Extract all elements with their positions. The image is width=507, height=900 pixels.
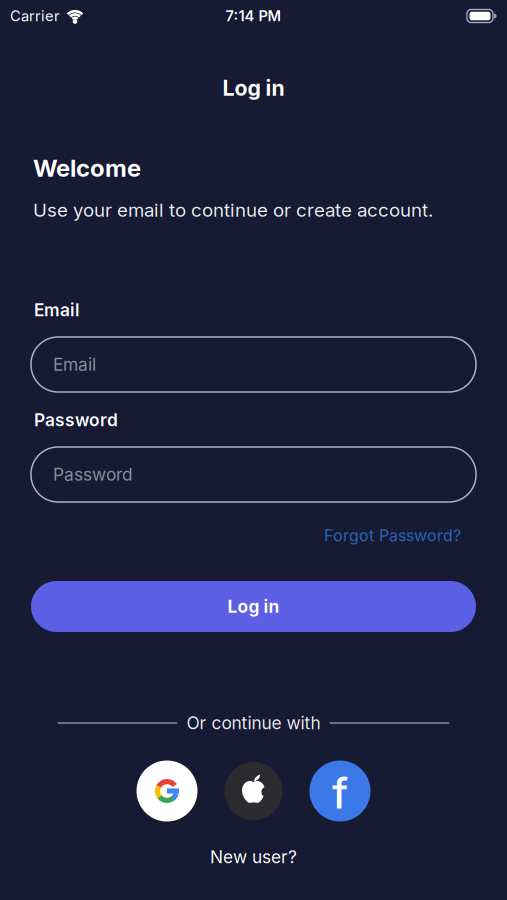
- staticText: Or continue with: [186, 713, 320, 733]
- staticText: Welcome: [33, 154, 141, 182]
- staticText: f: [332, 768, 348, 818]
- staticText: Log in: [227, 596, 279, 617]
- staticText: Email: [34, 300, 80, 320]
- button[interactable]: New user?: [210, 847, 297, 867]
- staticText: Log in: [222, 75, 284, 101]
- staticText: Password: [34, 410, 118, 430]
- button[interactable]: Continue with Facebook: [309, 760, 370, 821]
- staticText: Password: [53, 464, 133, 485]
- button[interactable]: Continue with Google: [136, 760, 197, 821]
- button[interactable]: Forgot Password?: [324, 526, 461, 545]
- staticText: 7:14 PM: [225, 7, 281, 25]
- staticText: Use your email to continue or create acc…: [33, 199, 433, 221]
- staticText: New user?: [210, 847, 297, 867]
- button[interactable]: Password: [31, 447, 476, 502]
- staticText: Email: [53, 354, 96, 375]
- staticText: Forgot Password?: [324, 526, 461, 545]
- button[interactable]: Continue with Apple: [224, 762, 282, 820]
- button[interactable]: Log in: [31, 581, 476, 632]
- button[interactable]: Email: [31, 337, 476, 392]
- staticText: Carrier: [10, 7, 60, 25]
